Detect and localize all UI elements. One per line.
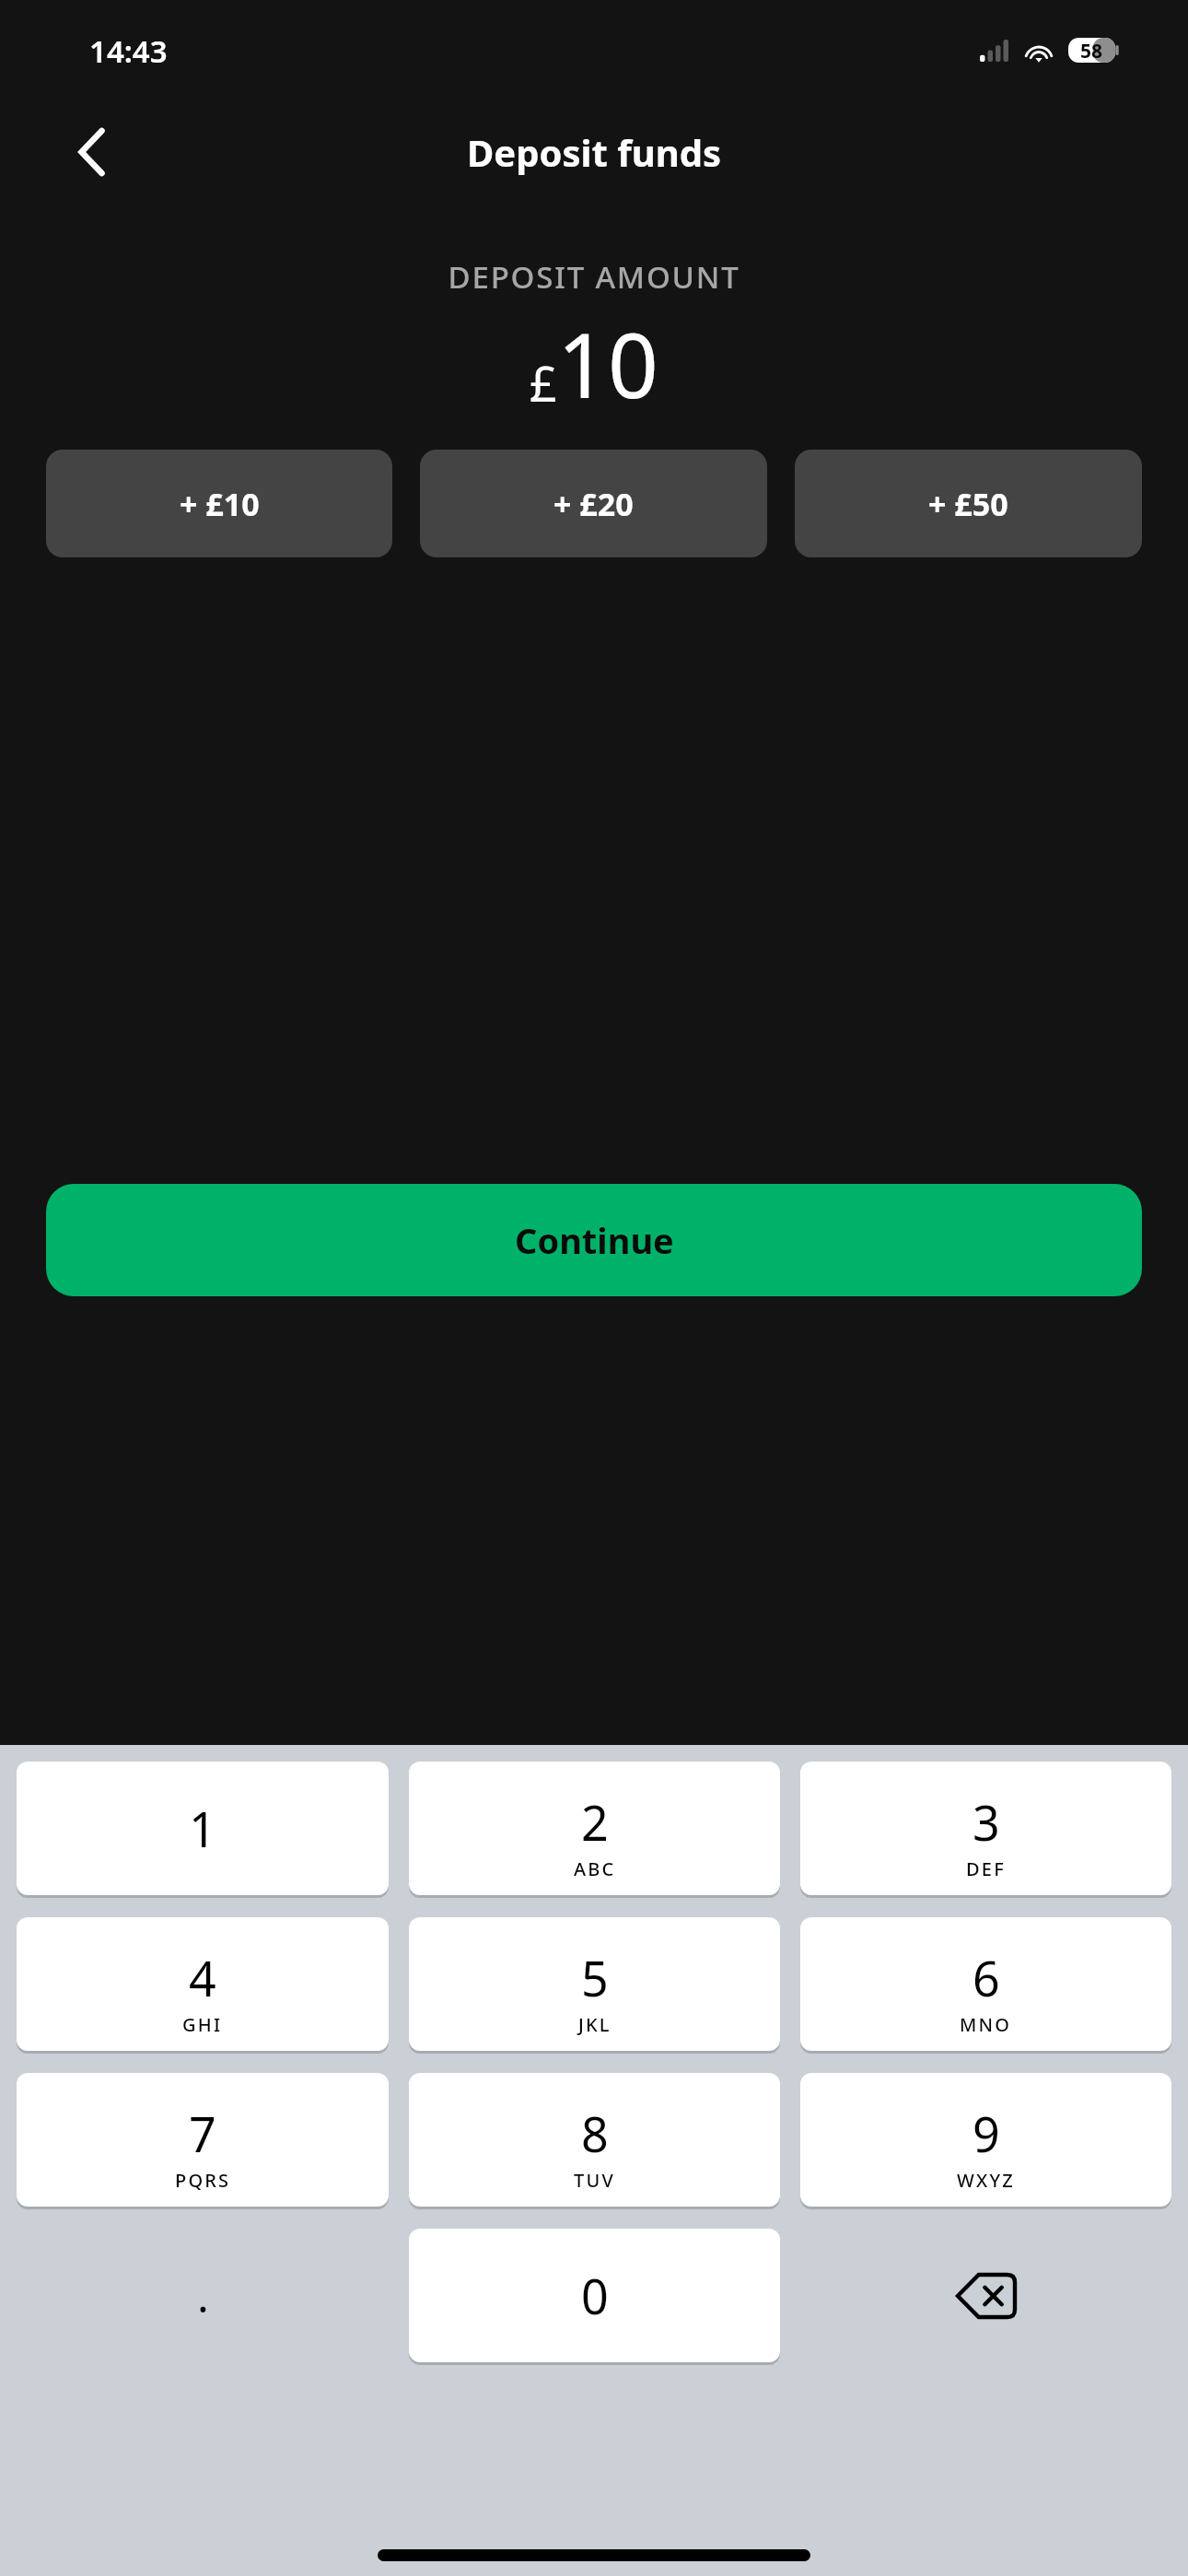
button[interactable]: 1 [17,1762,389,1895]
button[interactable]: Back [51,111,134,193]
staticText: 7 [189,2101,216,2166]
button[interactable]: 0 [409,2229,780,2362]
staticText: DEPOSIT AMOUNT [0,256,1188,298]
staticText: Continue [515,1216,674,1264]
staticText: + £10 [180,483,260,525]
staticText: PQRS [175,2168,231,2193]
staticText: 10 [557,303,658,424]
staticText: DEF [966,1856,1006,1881]
staticText: 1 [189,1796,216,1861]
button[interactable]: 5 [409,1917,780,2051]
staticText: Deposit funds [467,127,722,177]
staticText: 8 [581,2101,609,2166]
staticText: TUV [574,2168,615,2193]
staticText: 9 [973,2101,1000,2166]
staticText: 5 [581,1945,609,2010]
button[interactable]: Continue [46,1184,1142,1296]
staticText: . [197,2266,209,2325]
button[interactable]: 4 [17,1917,389,2051]
staticText: + £20 [553,483,634,525]
staticText: ABC [574,1856,616,1881]
staticText: + £50 [928,483,1008,525]
staticText: WXYZ [957,2168,1015,2193]
button[interactable]: 9 [800,2073,1171,2207]
button[interactable]: 2 [409,1762,780,1895]
staticText: 6 [973,1945,1000,2010]
button[interactable]: + £50 [795,450,1142,557]
staticText: 0 [581,2263,609,2328]
button[interactable]: Backspace [800,2229,1171,2362]
staticText: MNO [960,2012,1012,2037]
staticText: 3 [973,1789,1000,1855]
staticText: £ [530,350,557,416]
staticText: 4 [189,1945,216,2010]
button[interactable]: 3 [800,1762,1171,1895]
button[interactable]: + £20 [420,450,767,557]
staticText: GHI [182,2012,223,2037]
button[interactable]: 7 [17,2073,389,2207]
staticText: 14:43 [89,30,168,72]
staticText: JKL [578,2012,611,2037]
staticText: 58 [1080,38,1103,63]
staticText: 2 [581,1789,609,1855]
button[interactable]: 8 [409,2073,780,2207]
button[interactable]: . [17,2229,389,2362]
button[interactable]: + £10 [46,450,392,557]
button[interactable]: 6 [800,1917,1171,2051]
